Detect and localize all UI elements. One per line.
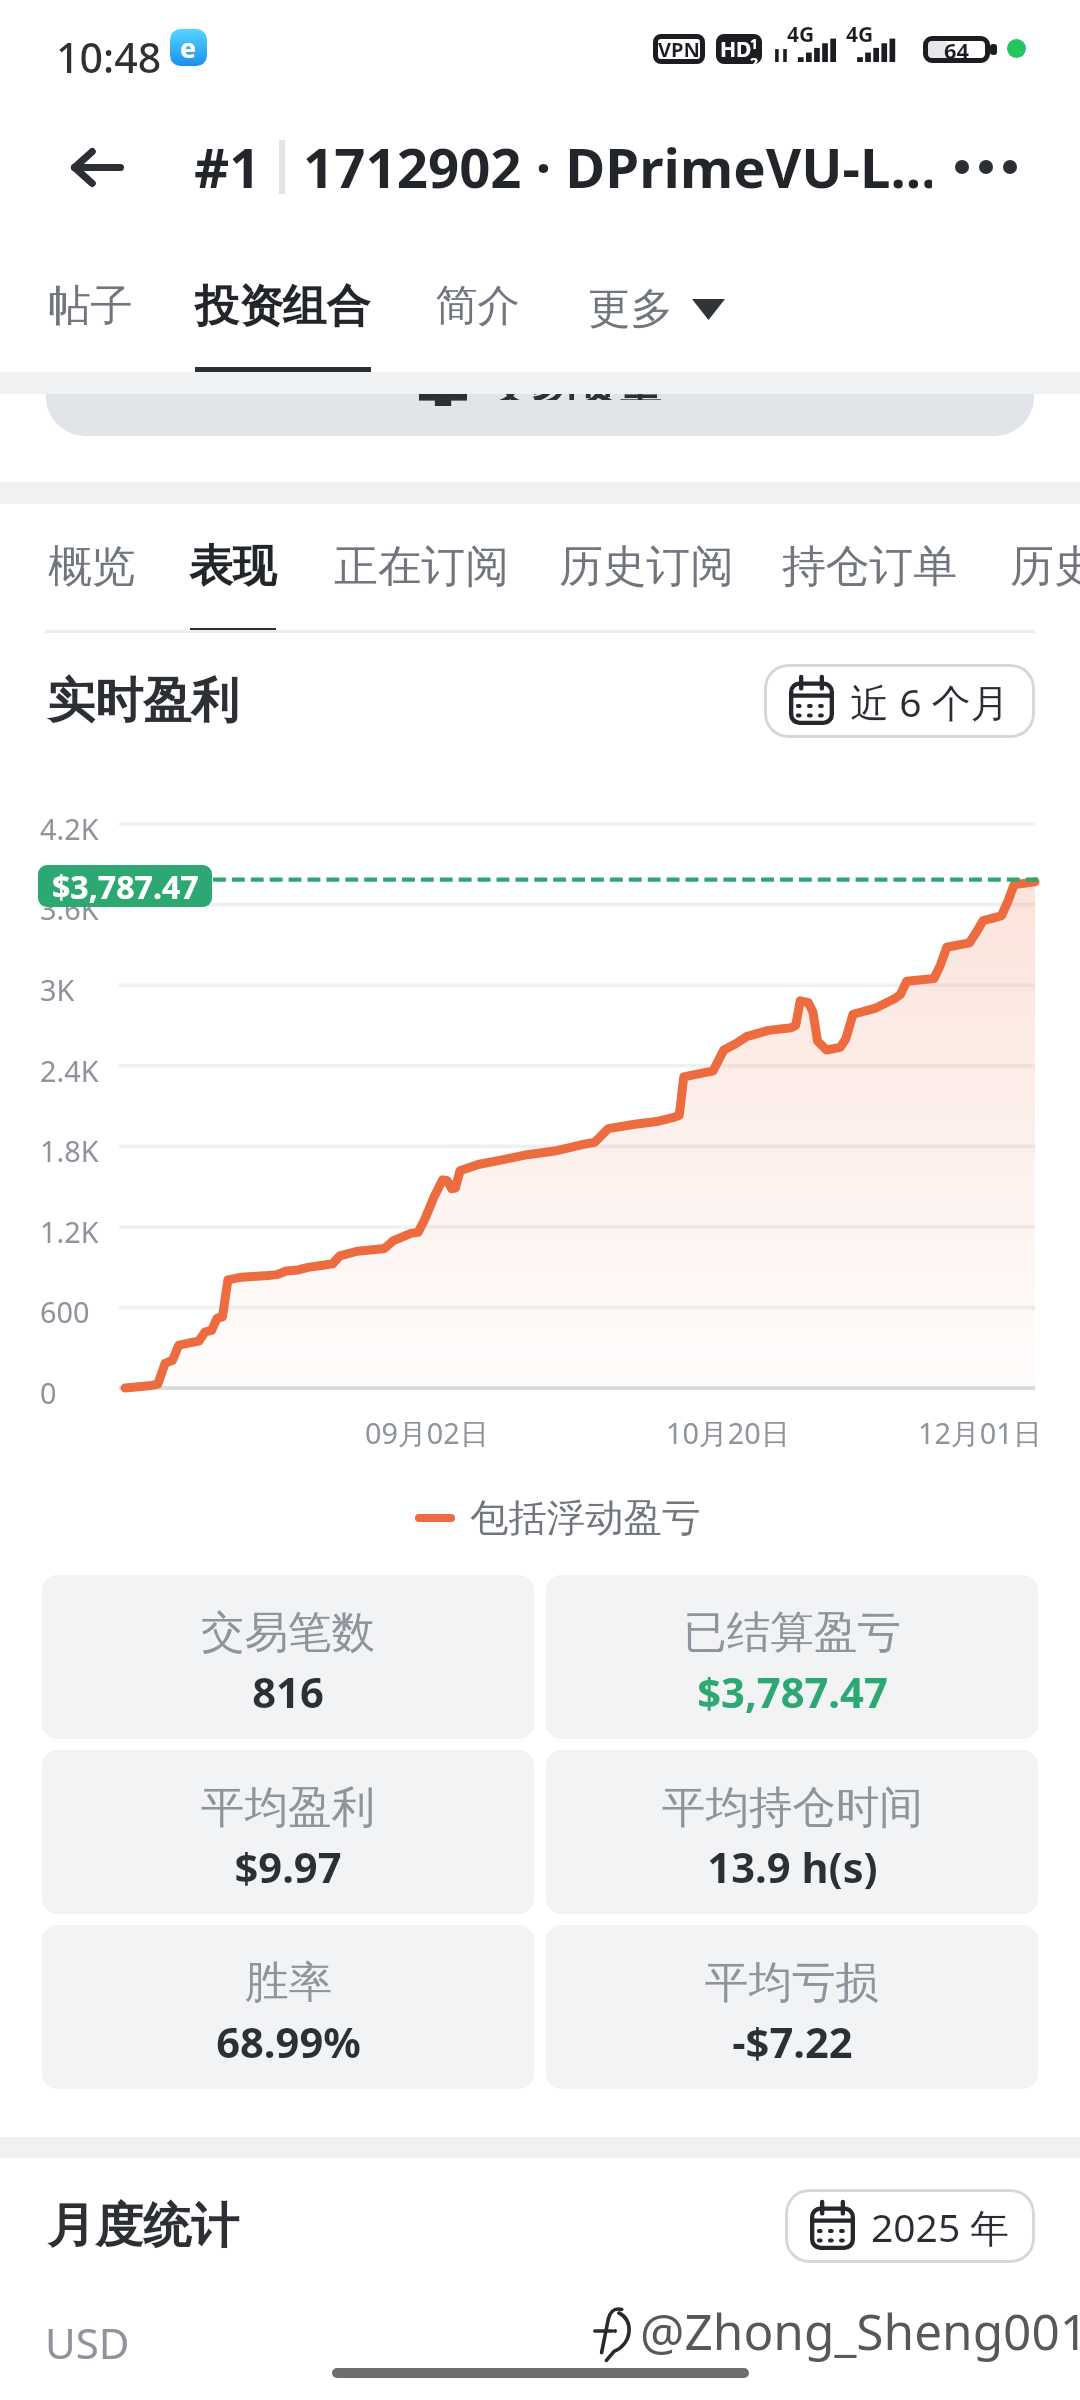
staticText: #1: [194, 130, 261, 204]
button[interactable]: 正在订阅: [334, 539, 510, 633]
staticText: 简介: [435, 279, 521, 333]
button[interactable]: 平均持仓时间: [546, 1750, 1038, 1914]
button[interactable]: 历史订阅: [559, 539, 735, 633]
staticText: 10:48: [56, 29, 162, 85]
staticText: 10月20日: [666, 1413, 790, 1452]
button[interactable]: 交易笔数: [42, 1575, 534, 1739]
button[interactable]: 帖子: [48, 279, 134, 371]
staticText: 2025 年: [871, 2200, 1010, 2253]
staticText: 4G: [846, 20, 874, 49]
staticText: 600: [40, 1292, 90, 1331]
staticText: 历史订阅: [559, 539, 735, 594]
staticText: 交易资量: [488, 394, 662, 400]
button[interactable]: 投资组合: [195, 279, 371, 372]
staticText: @Zhong_Sheng001: [640, 2297, 1080, 2364]
staticText: $3,787.47: [697, 1663, 888, 1720]
button[interactable]: 持仓订单: [782, 539, 958, 633]
button[interactable]: 概览: [48, 539, 136, 633]
button[interactable]: 简介: [435, 279, 521, 371]
staticText: -$7.22: [732, 2013, 853, 2070]
staticText: 月度统计: [47, 2196, 239, 2256]
staticText: 1712902 · DPrimeVU-L...: [303, 130, 932, 204]
staticText: 68.99%: [216, 2013, 361, 2070]
button[interactable]: 胜率: [42, 1925, 534, 2089]
staticText: 实时盈利: [47, 671, 239, 731]
staticText: 更多: [588, 282, 674, 336]
staticText: 1.8K: [40, 1131, 99, 1170]
staticText: 平均持仓时间: [662, 1780, 923, 1835]
staticText: 概览: [48, 539, 136, 594]
button[interactable]: 表现: [189, 539, 277, 633]
staticText: 交易笔数: [201, 1605, 375, 1660]
button[interactable]: 更多: [588, 279, 725, 339]
staticText: 近 6 个月: [850, 675, 1010, 728]
staticText: USD: [45, 2314, 130, 2371]
staticText: 1: [750, 34, 759, 53]
button[interactable]: 已结算盈亏: [546, 1575, 1038, 1739]
staticText: 09月02日: [365, 1413, 489, 1452]
staticText: 持仓订单: [782, 539, 958, 594]
staticText: 12月01日: [918, 1413, 1042, 1452]
staticText: VPN: [658, 36, 700, 63]
staticText: 4.2K: [40, 809, 99, 848]
staticText: 4G: [787, 20, 815, 49]
staticText: 3K: [40, 970, 75, 1009]
staticText: 3.6K: [40, 889, 99, 928]
staticText: 历史: [1010, 539, 1080, 594]
button[interactable]: 历史: [1010, 539, 1080, 633]
staticText: 0: [40, 1373, 57, 1412]
staticText: HD: [720, 35, 752, 64]
staticText: 2.4K: [40, 1051, 99, 1090]
staticText: 816: [252, 1663, 324, 1720]
button[interactable]: 近 6 个月: [764, 664, 1035, 738]
button[interactable]: More options: [923, 104, 1049, 230]
staticText: $9.97: [234, 1838, 342, 1895]
staticText: 已结算盈亏: [683, 1605, 901, 1660]
staticText: 1.2K: [40, 1212, 99, 1251]
staticText: e: [180, 29, 197, 66]
staticText: 表现: [189, 539, 277, 594]
button[interactable]: 平均亏损: [546, 1925, 1038, 2089]
staticText: 13.9 h(s): [707, 1838, 878, 1895]
button[interactable]: 2025 年: [785, 2189, 1035, 2263]
button[interactable]: 平均盈利: [42, 1750, 534, 1914]
staticText: 胜率: [245, 1955, 332, 2010]
staticText: 包括浮动盈亏: [470, 1494, 701, 1542]
staticText: 平均盈利: [201, 1780, 375, 1835]
staticText: 平均亏损: [705, 1955, 879, 2010]
staticText: 投资组合: [195, 279, 371, 334]
staticText: 64: [944, 36, 970, 63]
staticText: 帖子: [48, 279, 134, 333]
staticText: 2: [750, 53, 759, 64]
staticText: 正在订阅: [334, 539, 510, 594]
button[interactable]: Back: [34, 104, 160, 230]
staticText: $3,787.47: [52, 865, 199, 907]
